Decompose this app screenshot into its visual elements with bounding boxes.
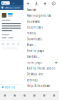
staticText: Home page	[26, 61, 42, 64]
button[interactable]: Bookmarks	[23, 19, 59, 24]
button[interactable]: Browser toolbar item	[39, 91, 49, 100]
staticText: Twitter	[11, 2, 15, 4]
staticText: Translate…	[26, 55, 39, 58]
button[interactable]: Download page	[32, 2, 41, 5]
staticText: Find in page	[26, 49, 44, 53]
button[interactable]: Home page	[23, 60, 59, 65]
staticText: New incognito tab	[26, 14, 51, 17]
button[interactable]: Recent tabs	[23, 24, 59, 30]
button[interactable]: Translate…	[23, 54, 59, 60]
staticText: Bookmarks	[26, 20, 39, 23]
staticText: twitter	[4, 2, 7, 4]
button[interactable]: Browser toolbar item	[29, 91, 39, 100]
button[interactable]: Forward	[23, 2, 32, 5]
button[interactable]: Settings	[23, 77, 59, 83]
button[interactable]: New incognito tab	[23, 13, 59, 19]
button[interactable]: Bookmark	[41, 2, 49, 5]
button[interactable]: New tab	[23, 7, 59, 13]
button[interactable]: Browser toolbar item	[49, 91, 59, 100]
button[interactable]: Browser toolbar item	[10, 91, 20, 100]
staticText: Settings	[26, 78, 37, 82]
staticText: Downloads	[26, 37, 41, 41]
button[interactable]: Browser toolbar item	[0, 91, 10, 100]
button[interactable]: Help & feedback	[23, 83, 59, 89]
staticText: Add to Home screen	[26, 67, 55, 70]
button[interactable]: Tweet action	[12, 43, 14, 45]
staticText: Sign up	[4, 85, 15, 89]
button[interactable]: Share…	[23, 42, 59, 48]
button[interactable]: Tweet action	[17, 43, 19, 45]
button[interactable]: Sign up	[0, 85, 23, 89]
staticText: History	[26, 32, 35, 35]
button[interactable]: Downloads	[23, 36, 59, 42]
button[interactable]: Page info	[49, 2, 58, 5]
staticText: New tab	[26, 8, 36, 12]
staticText: Help & feedback	[26, 84, 49, 88]
staticText: Desktop site	[26, 72, 43, 76]
staticText: twitter.com	[4, 6, 19, 9]
button[interactable]: Browser toolbar item	[20, 91, 29, 100]
button[interactable]: History	[23, 30, 59, 36]
staticText: Recent tabs	[26, 26, 42, 29]
button[interactable]: Add to Home screen	[23, 65, 59, 71]
button[interactable]: Desktop site	[23, 71, 59, 77]
staticText: Share…	[26, 43, 35, 47]
button[interactable]: Find in page	[23, 48, 59, 54]
